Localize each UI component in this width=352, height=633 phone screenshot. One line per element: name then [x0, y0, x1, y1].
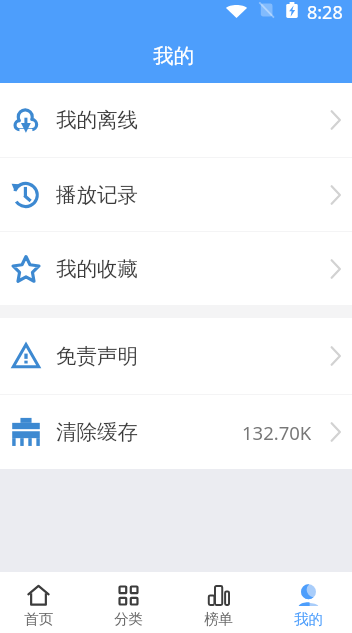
staticText: 132.70K	[242, 420, 312, 445]
staticText: 分类	[114, 610, 143, 628]
button[interactable]: 首页	[0, 572, 82, 633]
staticText: 我的	[153, 43, 194, 69]
staticText: 8:28	[307, 0, 343, 24]
staticText: 榜单	[204, 610, 233, 628]
button[interactable]: 分类	[84, 572, 172, 633]
staticText: 清除缓存	[56, 419, 138, 445]
staticText: 我的离线	[56, 107, 138, 133]
staticText: 首页	[24, 610, 53, 628]
button[interactable]: 清除缓存	[0, 395, 352, 469]
button[interactable]: 免责声明	[0, 318, 352, 394]
button[interactable]: 榜单	[174, 572, 262, 633]
staticText: 我的收藏	[56, 256, 138, 282]
button[interactable]: 播放记录	[0, 158, 352, 231]
staticText: 我的	[294, 610, 323, 628]
button[interactable]: 我的收藏	[0, 232, 352, 305]
staticText: 播放记录	[56, 182, 138, 208]
staticText: 免责声明	[56, 343, 138, 369]
button[interactable]: 我的离线	[0, 83, 352, 157]
button[interactable]: 我的	[264, 572, 352, 633]
